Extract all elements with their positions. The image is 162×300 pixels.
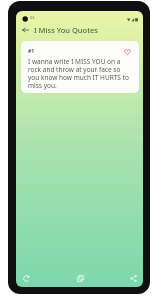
staticText: #1 [28,48,35,55]
staticText: 03 [30,15,35,20]
staticText: I wanna write I MISS YOU on a rock and t… [28,57,132,90]
button[interactable]: Refresh [18,270,34,286]
button[interactable]: Favorite [123,47,132,56]
button[interactable]: Share [125,270,141,286]
button[interactable]: Copy [72,270,88,286]
button[interactable]: Back [18,23,32,37]
button[interactable]: #1 [21,41,139,93]
staticText: I Miss You Quotes [34,25,98,35]
